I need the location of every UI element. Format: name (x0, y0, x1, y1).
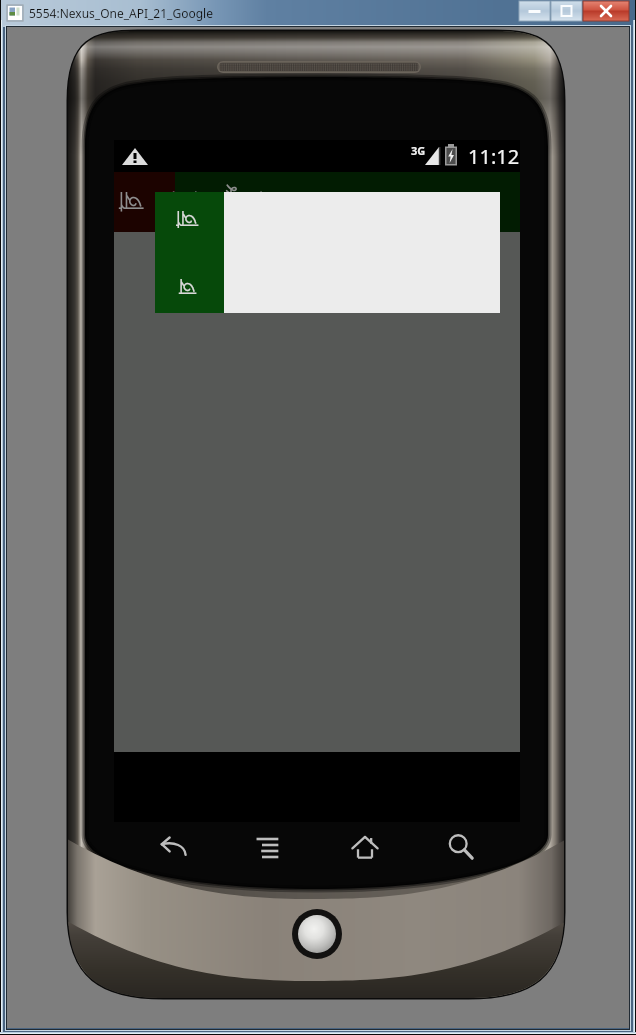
button[interactable]: Maximize (551, 1, 582, 21)
button[interactable]: Search (431, 822, 491, 872)
staticText: 5554:Nexus_One_API_21_Google (29, 5, 213, 21)
staticText: 3G (411, 143, 426, 158)
staticText: কিছু একটি আ (119, 183, 264, 224)
button[interactable]: Minimize (519, 1, 550, 21)
button[interactable]: আ (155, 192, 500, 313)
staticText: 11:12 (468, 143, 520, 170)
staticText: আ (176, 206, 198, 233)
button[interactable]: Back (143, 822, 203, 872)
button[interactable]: Menu (239, 822, 299, 872)
button[interactable]: Home (335, 822, 395, 872)
button[interactable]: Close (583, 1, 629, 21)
staticText: অ (179, 274, 196, 301)
